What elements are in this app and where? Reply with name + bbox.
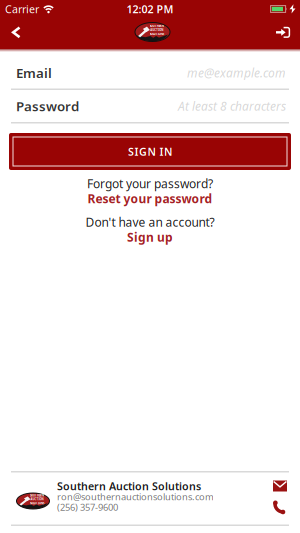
button[interactable]: Email Southern Auction Solutions [273, 480, 287, 491]
button[interactable]: Sign in [276, 19, 300, 48]
staticText: AUCTION [150, 28, 163, 32]
staticText: Forgot your password? [87, 175, 213, 191]
staticText: Carrier [5, 2, 39, 16]
staticText: At least 8 characters [178, 98, 286, 114]
button[interactable]: Sign up [127, 230, 173, 243]
staticText: Don't have an account? [85, 214, 214, 230]
staticText: me@example.com [187, 65, 286, 81]
staticText: Reset your password [87, 190, 212, 206]
staticText: Password [16, 97, 79, 115]
button[interactable]: SIGN IN [9, 133, 291, 170]
staticText: ron@southernauctionsolutions.com [57, 491, 214, 503]
staticText: SOLUTIONS [150, 32, 164, 36]
staticText: SOUTHERN [30, 494, 44, 497]
staticText: (256) 357-9600 [57, 501, 118, 513]
staticText: Email [16, 64, 52, 82]
button[interactable]: Call Southern Auction Solutions [273, 500, 287, 514]
button[interactable]: Email [0, 57, 300, 88]
staticText: SOLUTIONS [30, 501, 44, 505]
staticText: AUCTION [30, 497, 43, 501]
button[interactable]: Back [0, 19, 21, 48]
staticText: SIGN IN [128, 144, 172, 159]
staticText: Southern Auction Solutions [57, 479, 201, 493]
button[interactable]: Password [0, 90, 300, 122]
staticText: SOUTHERN [150, 24, 164, 28]
button[interactable]: Reset your password [87, 192, 212, 205]
staticText: 12:02 PM [126, 2, 173, 16]
staticText: Sign up [127, 229, 173, 245]
